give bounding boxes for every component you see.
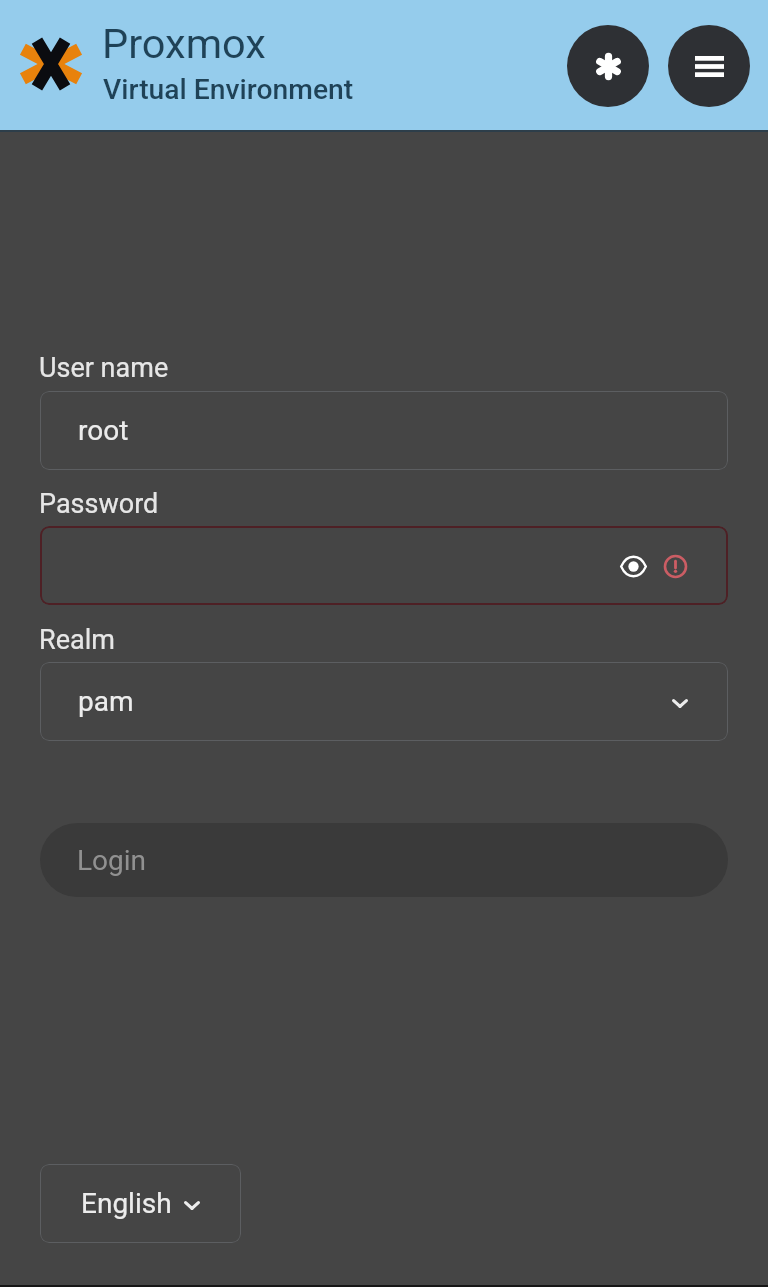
staticText: User name [39,352,169,384]
button[interactable]: Show password [611,546,655,586]
button[interactable]: Toggle dark mode [567,25,649,107]
staticText: Proxmox [102,19,266,68]
staticText: Password [39,488,159,520]
other: Password required [655,546,696,586]
button[interactable]: Menu [668,25,750,107]
staticText: English [81,1187,172,1220]
button[interactable]: pam [40,662,728,741]
staticText: Realm [39,624,115,656]
staticText: pam [78,685,134,718]
staticText: Virtual Environment [103,73,354,106]
button[interactable]: root [40,391,728,470]
button[interactable]: Login [40,823,728,897]
staticText: Login [77,844,147,877]
staticText: root [78,414,129,447]
button[interactable]: Show password [40,526,728,605]
button[interactable]: English [40,1164,241,1243]
